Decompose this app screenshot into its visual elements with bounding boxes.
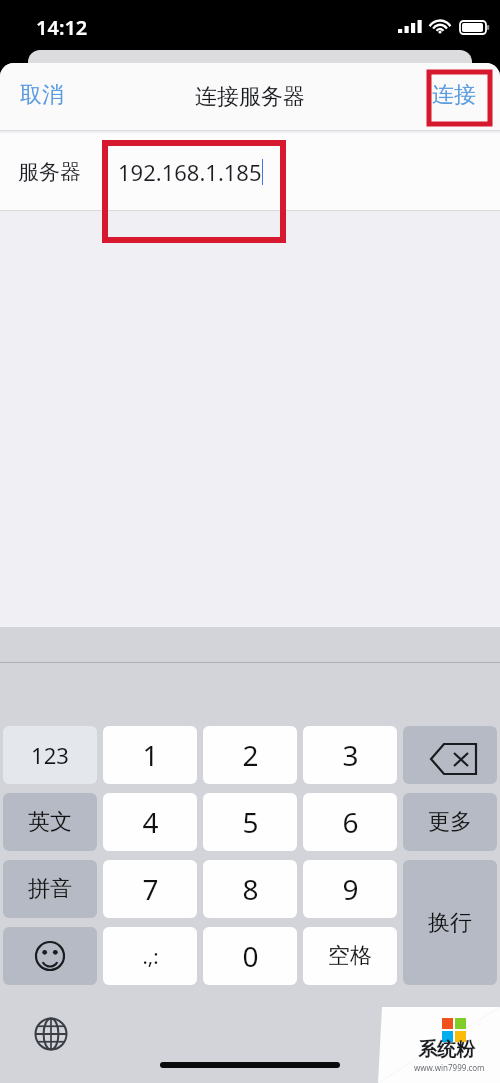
staticText: 空格	[328, 942, 372, 970]
button[interactable]: 0	[203, 927, 297, 985]
button[interactable]: 8	[203, 860, 297, 918]
staticText: www.win7999.com	[414, 1062, 485, 1073]
staticText: 6	[342, 803, 359, 841]
button[interactable]: 7	[103, 860, 197, 918]
button[interactable]: 192.168.1.185	[118, 157, 500, 187]
staticText: 换行	[428, 909, 472, 937]
button[interactable]: 4	[103, 793, 197, 851]
staticText: 14:12	[36, 14, 88, 41]
button[interactable]: 英文	[3, 793, 97, 851]
staticText: 取消	[20, 81, 64, 109]
staticText: 更多	[428, 808, 472, 836]
button[interactable]: 123	[3, 726, 97, 784]
staticText: 连接服务器	[195, 83, 305, 111]
staticText: 1	[142, 736, 159, 774]
staticText: 2	[242, 736, 259, 774]
staticText: 4	[142, 803, 159, 841]
staticText: 123	[31, 740, 69, 770]
button[interactable]: 拼音	[3, 860, 97, 918]
staticText: 9	[342, 870, 359, 908]
button[interactable]: 9	[303, 860, 397, 918]
button[interactable]: Backspace	[403, 726, 497, 784]
staticText: .,:	[142, 943, 159, 970]
button[interactable]: Emoji	[3, 927, 97, 985]
button[interactable]: 6	[303, 793, 397, 851]
staticText: 英文	[28, 808, 72, 836]
button[interactable]: 换行	[403, 860, 497, 985]
staticText: 系统粉	[418, 1038, 475, 1062]
staticText: 3	[342, 736, 359, 774]
button[interactable]: 更多	[403, 793, 497, 851]
button[interactable]: 取消	[20, 81, 64, 109]
staticText: 7	[142, 870, 159, 908]
button[interactable]: 2	[203, 726, 297, 784]
button[interactable]: .,:	[103, 927, 197, 985]
staticText: 5	[242, 803, 259, 841]
button[interactable]: Switch keyboard	[30, 1013, 72, 1055]
staticText: 8	[242, 870, 259, 908]
button[interactable]: 3	[303, 726, 397, 784]
staticText: 192.168.1.185	[118, 157, 262, 187]
button[interactable]: 连接	[432, 81, 476, 109]
button[interactable]: 空格	[303, 927, 397, 985]
staticText: 0	[242, 937, 259, 975]
staticText: 连接	[432, 81, 476, 109]
staticText: 服务器	[18, 159, 81, 185]
button[interactable]: 1	[103, 726, 197, 784]
button[interactable]: 5	[203, 793, 297, 851]
staticText: 拼音	[28, 875, 72, 903]
